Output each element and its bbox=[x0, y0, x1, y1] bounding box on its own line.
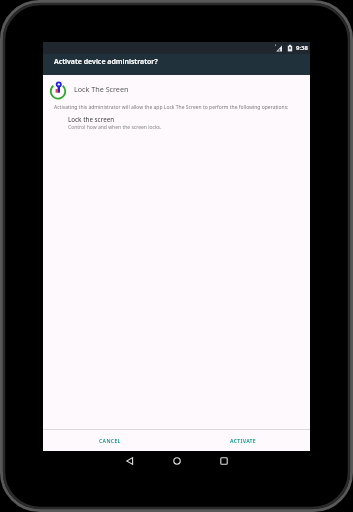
staticText: Activating this administrator will allow… bbox=[54, 104, 289, 111]
button[interactable] bbox=[110, 451, 150, 471]
staticText: Lock The Screen bbox=[74, 84, 129, 94]
button[interactable]: ACTIVATE bbox=[176, 430, 310, 451]
staticText: CANCEL bbox=[99, 437, 121, 444]
staticText: ACTIVATE bbox=[230, 437, 256, 444]
staticText: Lock the screen bbox=[68, 115, 115, 123]
staticText: Activate device administrator? bbox=[54, 57, 158, 67]
button[interactable]: CANCEL bbox=[43, 430, 176, 451]
button[interactable] bbox=[204, 451, 244, 471]
staticText: Control how and when the screen locks. bbox=[68, 124, 162, 131]
button[interactable] bbox=[157, 451, 197, 471]
staticText: 9:38 bbox=[296, 44, 308, 52]
